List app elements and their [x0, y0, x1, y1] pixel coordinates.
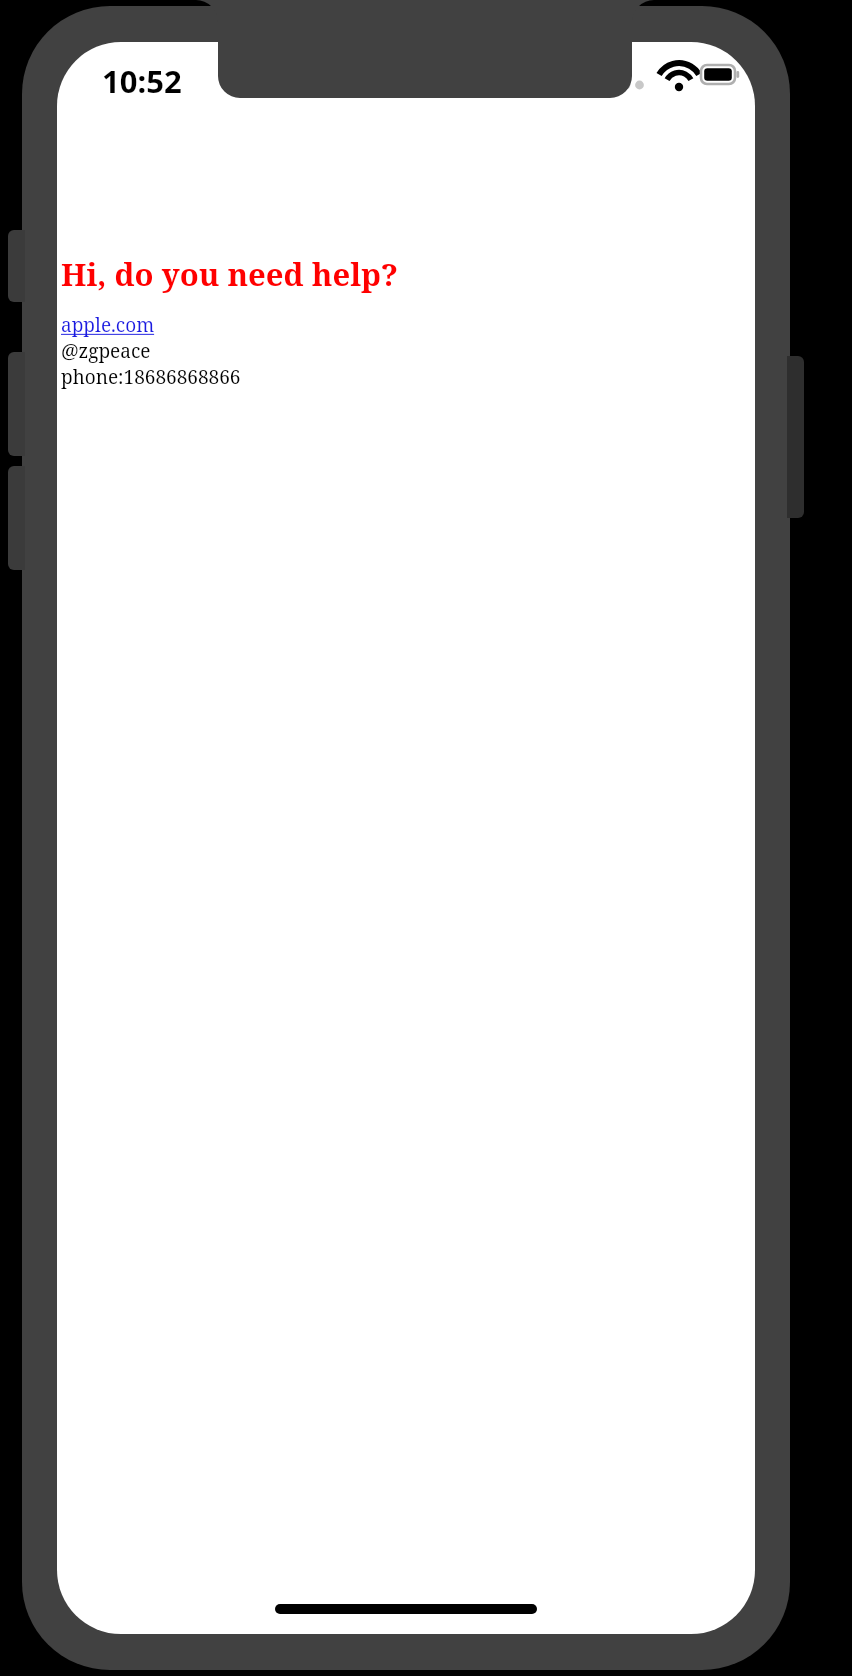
other: Volume up [8, 352, 25, 456]
staticText: phone:18686868866 [61, 364, 241, 390]
other: Power [787, 356, 804, 518]
staticText: @zgpeace [61, 338, 151, 364]
other: Signal, Wi-Fi and battery status [593, 59, 733, 97]
button[interactable]: apple.com [61, 312, 155, 338]
other: Volume down [8, 466, 25, 570]
button[interactable]: Hi, do you need help? [61, 253, 399, 295]
staticText: 10:52 [102, 60, 182, 102]
other: Silent switch [8, 230, 25, 302]
